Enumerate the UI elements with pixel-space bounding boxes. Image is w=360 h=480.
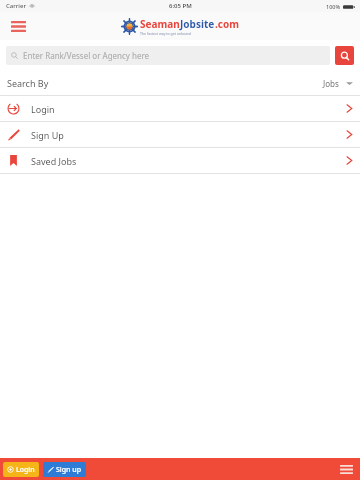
- button[interactable]: Search By: [0, 71, 360, 95]
- button[interactable]: Login: [0, 96, 360, 121]
- staticText: Sign up: [56, 465, 82, 475]
- staticText: 6:05 PM: [169, 2, 192, 10]
- button[interactable]: Sign Up: [0, 122, 360, 147]
- button[interactable]: Search: [335, 46, 354, 65]
- staticText: .com: [215, 17, 239, 31]
- staticText: Saved Jobs: [31, 155, 77, 167]
- staticText: 100%: [326, 3, 341, 10]
- button[interactable]: Sign up: [43, 462, 86, 477]
- staticText: Jobs: [323, 78, 339, 89]
- staticText: The fastest way to get onboard: [140, 31, 191, 36]
- staticText: Sign Up: [31, 129, 64, 141]
- button[interactable]: Enter Rank/Vessel or Agency here: [6, 46, 330, 65]
- staticText: Carrier: [6, 2, 26, 10]
- staticText: Login: [31, 103, 55, 115]
- staticText: Enter Rank/Vessel or Agency here: [23, 50, 150, 61]
- button[interactable]: Login: [3, 462, 39, 477]
- button[interactable]: Menu: [337, 460, 355, 478]
- button[interactable]: Saved Jobs: [0, 148, 360, 173]
- staticText: Seaman: [140, 17, 180, 31]
- button[interactable]: Menu: [6, 14, 30, 38]
- staticText: Login: [16, 465, 35, 475]
- staticText: Jobsite: [180, 17, 215, 31]
- staticText: Search By: [7, 77, 49, 89]
